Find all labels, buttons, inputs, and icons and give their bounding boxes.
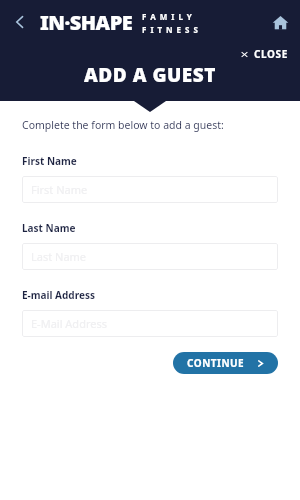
button[interactable]: Last Name (22, 243, 278, 270)
staticText: E-mail Address (22, 288, 95, 302)
staticText: Last Name (31, 249, 87, 264)
staticText: E-Mail Address (31, 316, 107, 331)
staticText: Complete the form below to add a guest: (22, 118, 224, 132)
button[interactable]: E-Mail Address (22, 310, 278, 337)
button[interactable]: CONTINUE (173, 352, 278, 374)
button[interactable]: Back (6, 8, 34, 36)
staticText: ADD A GUEST (84, 62, 216, 88)
staticText: FITNESS (142, 24, 202, 35)
staticText: CLOSE (254, 47, 288, 61)
staticText: First Name (31, 182, 88, 197)
staticText: FAMILY (142, 11, 196, 22)
button[interactable]: First Name (22, 176, 278, 203)
staticText: CONTINUE (187, 356, 245, 370)
button[interactable]: CLOSE (238, 44, 290, 64)
button[interactable]: Home (266, 8, 294, 36)
staticText: Last Name (22, 221, 76, 235)
staticText: IN·SHAPE (40, 9, 133, 36)
staticText: First Name (22, 154, 77, 168)
